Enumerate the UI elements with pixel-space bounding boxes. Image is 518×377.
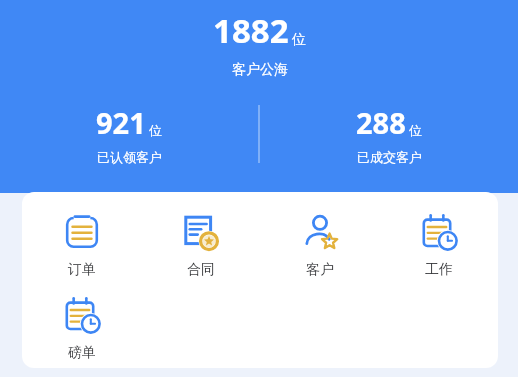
other: 订单 <box>62 212 102 252</box>
staticText: 位 <box>149 122 162 138</box>
staticText: 磅单 <box>68 344 96 360</box>
other: 磅单 <box>62 295 102 335</box>
staticText: 已成交客户 <box>357 149 422 165</box>
staticText: 客户公海 <box>232 61 288 79</box>
button[interactable]: 工作 <box>379 204 498 287</box>
button[interactable]: 磅单 <box>22 287 141 368</box>
button[interactable]: 客户 <box>260 204 379 287</box>
button[interactable]: 合同 <box>141 204 260 287</box>
other: 合同 <box>181 212 221 252</box>
staticText: 921 <box>96 103 146 142</box>
other: 工作 <box>419 212 459 252</box>
other: 客户 <box>300 212 340 252</box>
staticText: 288 <box>356 103 406 142</box>
staticText: 位 <box>409 122 422 138</box>
staticText: 已认领客户 <box>97 149 162 165</box>
staticText: 客户 <box>306 261 334 279</box>
staticText: 订单 <box>68 261 96 279</box>
staticText: 1882 <box>213 8 289 53</box>
button[interactable]: 订单 <box>22 204 141 287</box>
staticText: 工作 <box>425 261 453 279</box>
staticText: 位 <box>292 31 306 49</box>
staticText: 合同 <box>187 261 215 279</box>
